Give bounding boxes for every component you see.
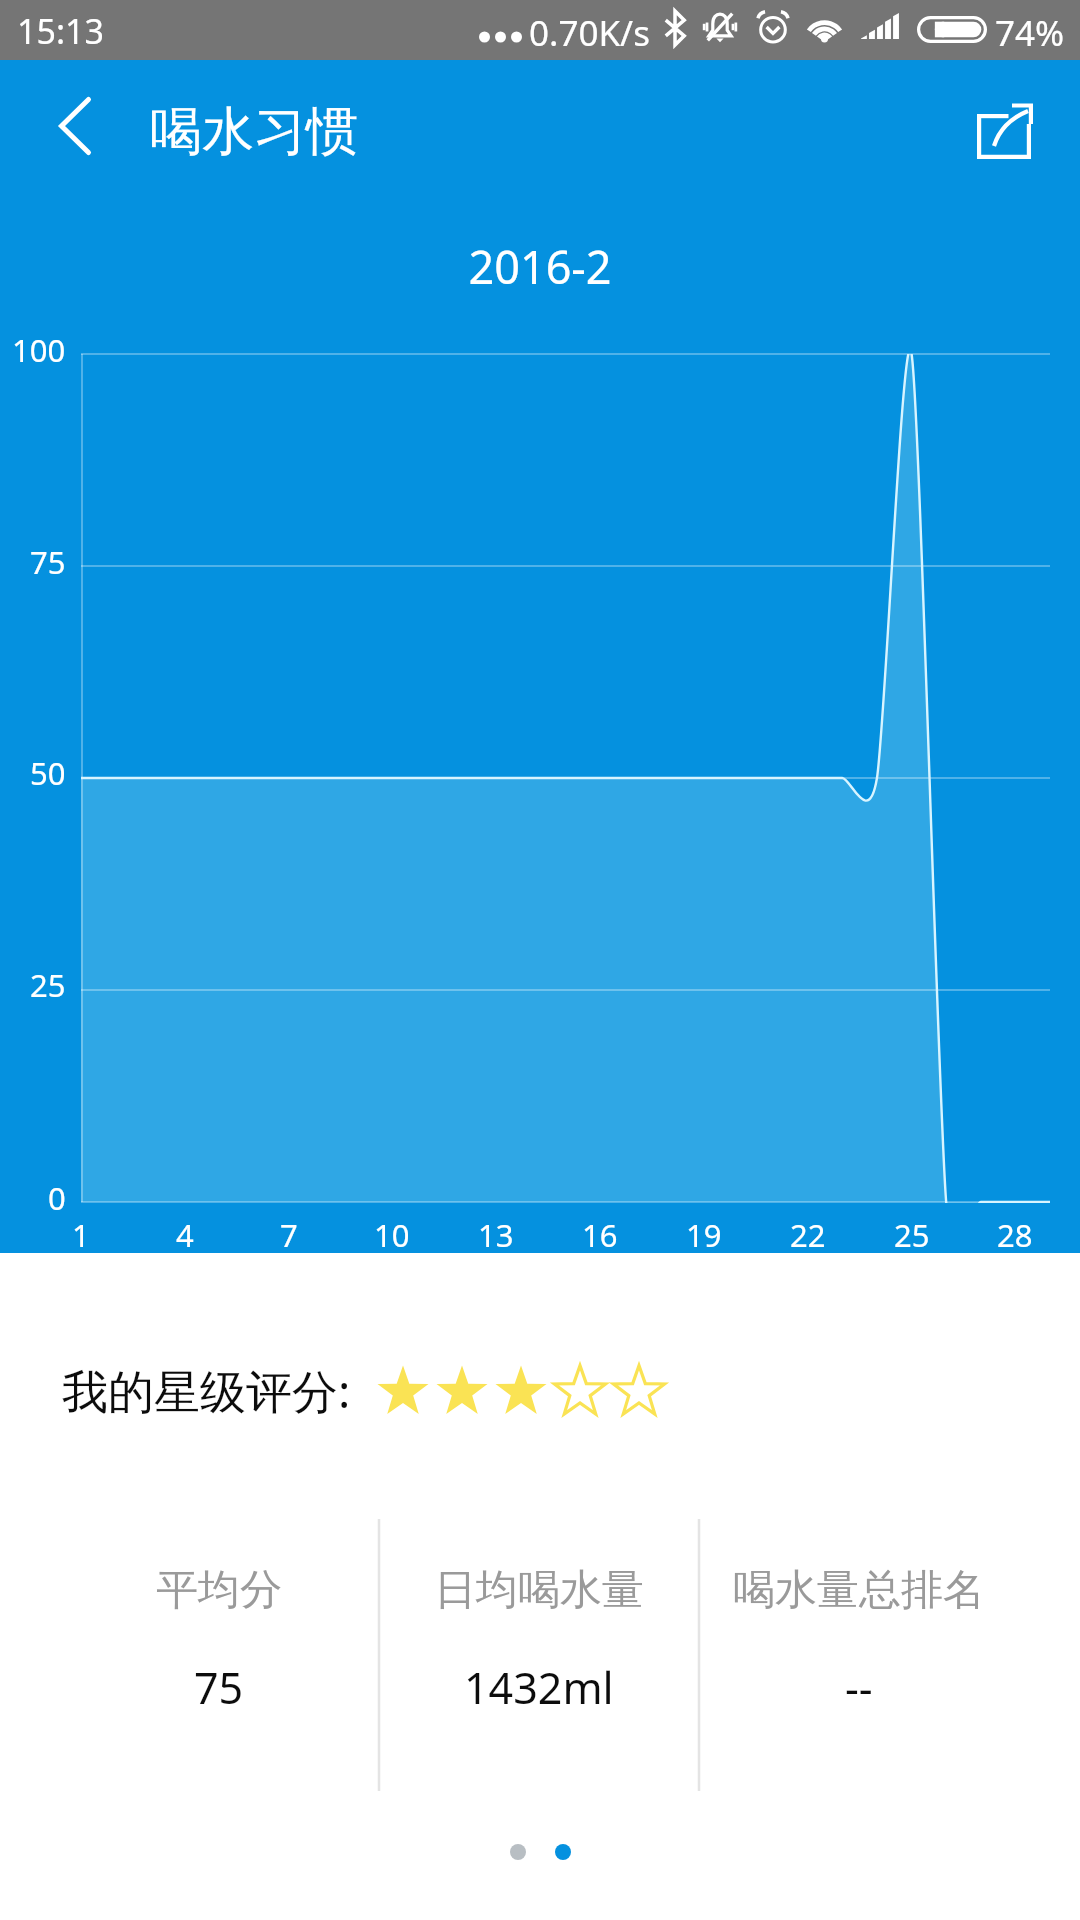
staticText: 50 [30, 752, 66, 794]
staticText: 1 [72, 1214, 90, 1256]
button[interactable]: Back [32, 83, 118, 169]
staticText: 15:13 [17, 8, 104, 54]
staticText: 100 [12, 329, 66, 371]
staticText: 19 [686, 1214, 722, 1256]
staticText: 喝水量总排名 [733, 1564, 985, 1617]
staticText: 25 [894, 1214, 930, 1256]
button[interactable]: Share [958, 81, 1054, 177]
staticText: 25 [30, 964, 66, 1006]
staticText: 75 [194, 1658, 244, 1717]
staticText: 75 [30, 541, 66, 583]
staticText: 2016-2 [0, 236, 1080, 297]
staticText: -- [845, 1658, 873, 1717]
staticText: 平均分 [156, 1564, 282, 1617]
staticText: 喝水习惯 [150, 99, 358, 165]
staticText: 日均喝水量 [434, 1564, 644, 1617]
staticText: 7 [280, 1214, 298, 1256]
staticText: 10 [374, 1214, 410, 1256]
button[interactable]: Page 2 [543, 1832, 583, 1872]
staticText: 0.70K/s [529, 9, 650, 57]
staticText: 28 [997, 1214, 1033, 1256]
staticText: 22 [790, 1214, 826, 1256]
button[interactable]: Page 1 [498, 1832, 538, 1872]
staticText: 16 [582, 1214, 618, 1256]
staticText: 1432ml [464, 1658, 614, 1717]
staticText: 0 [48, 1177, 66, 1219]
staticText: 74% [995, 9, 1065, 57]
staticText: 4 [176, 1214, 194, 1256]
staticText: 13 [478, 1214, 514, 1256]
staticText: 我的星级评分: [62, 1359, 351, 1422]
